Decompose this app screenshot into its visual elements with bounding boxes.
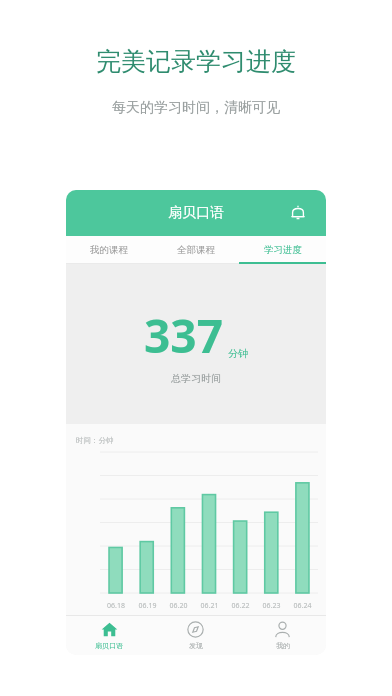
staticText: 06.18 xyxy=(100,601,132,611)
staticText: 总学习时间 xyxy=(171,372,221,385)
staticText: 时间：分钟 xyxy=(76,436,114,445)
staticText: 我的课程 xyxy=(90,244,128,256)
staticText: 学习进度 xyxy=(264,244,302,256)
staticText: 06.22 xyxy=(225,601,256,611)
staticText: 06.21 xyxy=(194,601,225,611)
button[interactable]: 学习进度 xyxy=(239,236,326,264)
staticText: 06.19 xyxy=(132,601,163,611)
staticText: 扇贝口语 xyxy=(95,641,123,650)
staticText: 337 xyxy=(144,304,223,367)
staticText: 06.20 xyxy=(163,601,194,611)
staticText: 完美记录学习进度 xyxy=(0,46,392,77)
staticText: 发现 xyxy=(189,641,203,650)
button[interactable]: 发现 xyxy=(152,615,239,655)
staticText: 我的 xyxy=(276,641,290,650)
staticText: 分钟 xyxy=(228,347,248,360)
button[interactable]: 我的课程 xyxy=(66,236,152,264)
staticText: 06.24 xyxy=(287,601,318,611)
staticText: 每天的学习时间，清晰可见 xyxy=(0,99,392,117)
staticText: 06.23 xyxy=(256,601,287,611)
staticText: 全部课程 xyxy=(177,244,215,256)
button[interactable]: Notifications xyxy=(284,199,312,227)
staticText: 扇贝口语 xyxy=(66,204,326,222)
button[interactable]: 扇贝口语 xyxy=(66,615,152,655)
button[interactable]: 全部课程 xyxy=(152,236,239,264)
button[interactable]: 我的 xyxy=(239,615,326,655)
